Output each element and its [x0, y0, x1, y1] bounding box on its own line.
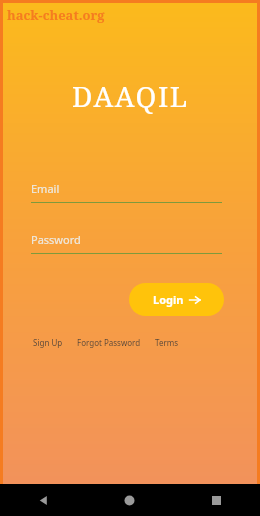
button[interactable]: Sign Up	[33, 337, 63, 348]
staticText: Email	[31, 181, 60, 196]
button[interactable]: Terms	[155, 337, 179, 348]
staticText: Password	[31, 232, 81, 247]
button[interactable]: Home	[86, 484, 173, 516]
staticText: hack-cheat.org	[7, 6, 105, 24]
staticText: Forgot Password	[77, 337, 141, 348]
button[interactable]: Back	[0, 484, 86, 516]
staticText: Login	[153, 292, 184, 307]
button[interactable]: Recent apps	[173, 484, 260, 516]
button[interactable]: Email	[31, 181, 222, 203]
staticText: Sign Up	[33, 337, 63, 348]
button[interactable]: Login	[129, 283, 224, 316]
button[interactable]: Password	[31, 232, 222, 254]
staticText: DAAQIL	[72, 77, 189, 115]
staticText: Terms	[155, 337, 179, 348]
button[interactable]: Forgot Password	[77, 337, 141, 348]
